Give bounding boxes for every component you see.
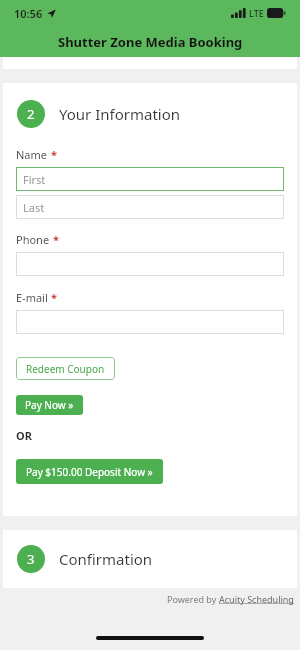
staticText: First <box>23 172 46 187</box>
button[interactable] <box>16 252 284 276</box>
button[interactable]: Last <box>16 195 284 219</box>
button[interactable] <box>16 310 284 334</box>
button[interactable]: Pay Now » <box>16 395 83 415</box>
staticText: LTE <box>249 7 264 19</box>
button[interactable]: First <box>16 167 284 191</box>
button[interactable]: Redeem Coupon <box>16 357 115 380</box>
staticText: OR <box>16 428 32 443</box>
staticText: Last <box>23 200 45 215</box>
staticText: * <box>51 147 57 162</box>
staticText: Powered by <box>167 593 219 605</box>
staticText: * <box>51 290 57 305</box>
staticText: Name <box>16 147 48 162</box>
staticText: Pay $150.00 Deposit Now » <box>26 465 153 479</box>
button[interactable]: Acuity Scheduling <box>219 593 294 605</box>
staticText: 3 <box>27 550 35 568</box>
staticText: Acuity Scheduling <box>219 593 294 605</box>
staticText: Shutter Zone Media Booking <box>58 33 243 51</box>
staticText: Confirmation <box>59 549 153 569</box>
staticText: * <box>53 232 59 247</box>
staticText: Phone <box>16 232 50 247</box>
staticText: E-mail <box>16 290 48 305</box>
staticText: 10:56 <box>14 6 43 21</box>
staticText: 2 <box>27 105 35 123</box>
button[interactable]: Pay $150.00 Deposit Now » <box>16 459 163 484</box>
button[interactable]: 3 <box>3 530 297 588</box>
staticText: Redeem Coupon <box>26 362 105 376</box>
staticText: Your Information <box>59 104 181 124</box>
staticText: Pay Now » <box>25 398 74 412</box>
